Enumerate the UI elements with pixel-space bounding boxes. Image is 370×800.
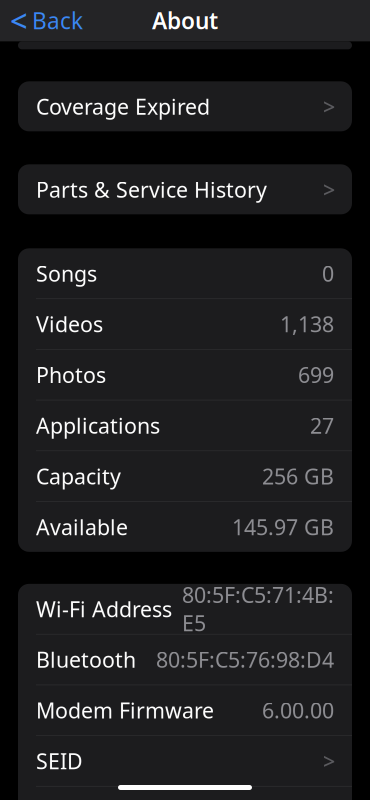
staticText: Songs (36, 259, 97, 287)
staticText: Bluetooth (36, 645, 136, 674)
staticText: Modem Firmware (36, 696, 214, 724)
staticText: 256 GB (262, 462, 334, 490)
staticText: Parts & Service History (36, 175, 267, 203)
staticText: > (323, 92, 335, 120)
button[interactable]: SEID (18, 736, 352, 786)
staticText: Wi-Fi Address (36, 595, 172, 623)
staticText: Capacity (36, 462, 121, 490)
staticText: 6.00.00 (262, 696, 334, 724)
staticText: Applications (36, 411, 160, 440)
staticText: 699 (298, 361, 334, 389)
staticText: 80:5F:C5:76:98:D4 (156, 645, 334, 674)
staticText: Photos (36, 361, 106, 389)
staticText: Videos (36, 310, 103, 338)
staticText: < (10, 0, 28, 41)
staticText: Back (32, 5, 83, 35)
button[interactable]: < (0, 0, 93, 48)
staticText: > (323, 747, 335, 775)
staticText: Available (36, 513, 128, 541)
staticText: 145.97 GB (232, 513, 334, 541)
staticText: 80:5F:C5:71:4B:E5 (182, 580, 334, 637)
staticText: Coverage Expired (36, 92, 210, 120)
button[interactable]: Coverage Expired (18, 81, 352, 131)
staticText: About (152, 5, 218, 35)
staticText: 0 (322, 259, 334, 287)
button[interactable]: Parts & Service History (18, 164, 352, 214)
staticText: 27 (310, 411, 334, 440)
staticText: SEID (36, 747, 83, 775)
staticText: 1,138 (280, 310, 334, 338)
staticText: > (323, 175, 335, 203)
